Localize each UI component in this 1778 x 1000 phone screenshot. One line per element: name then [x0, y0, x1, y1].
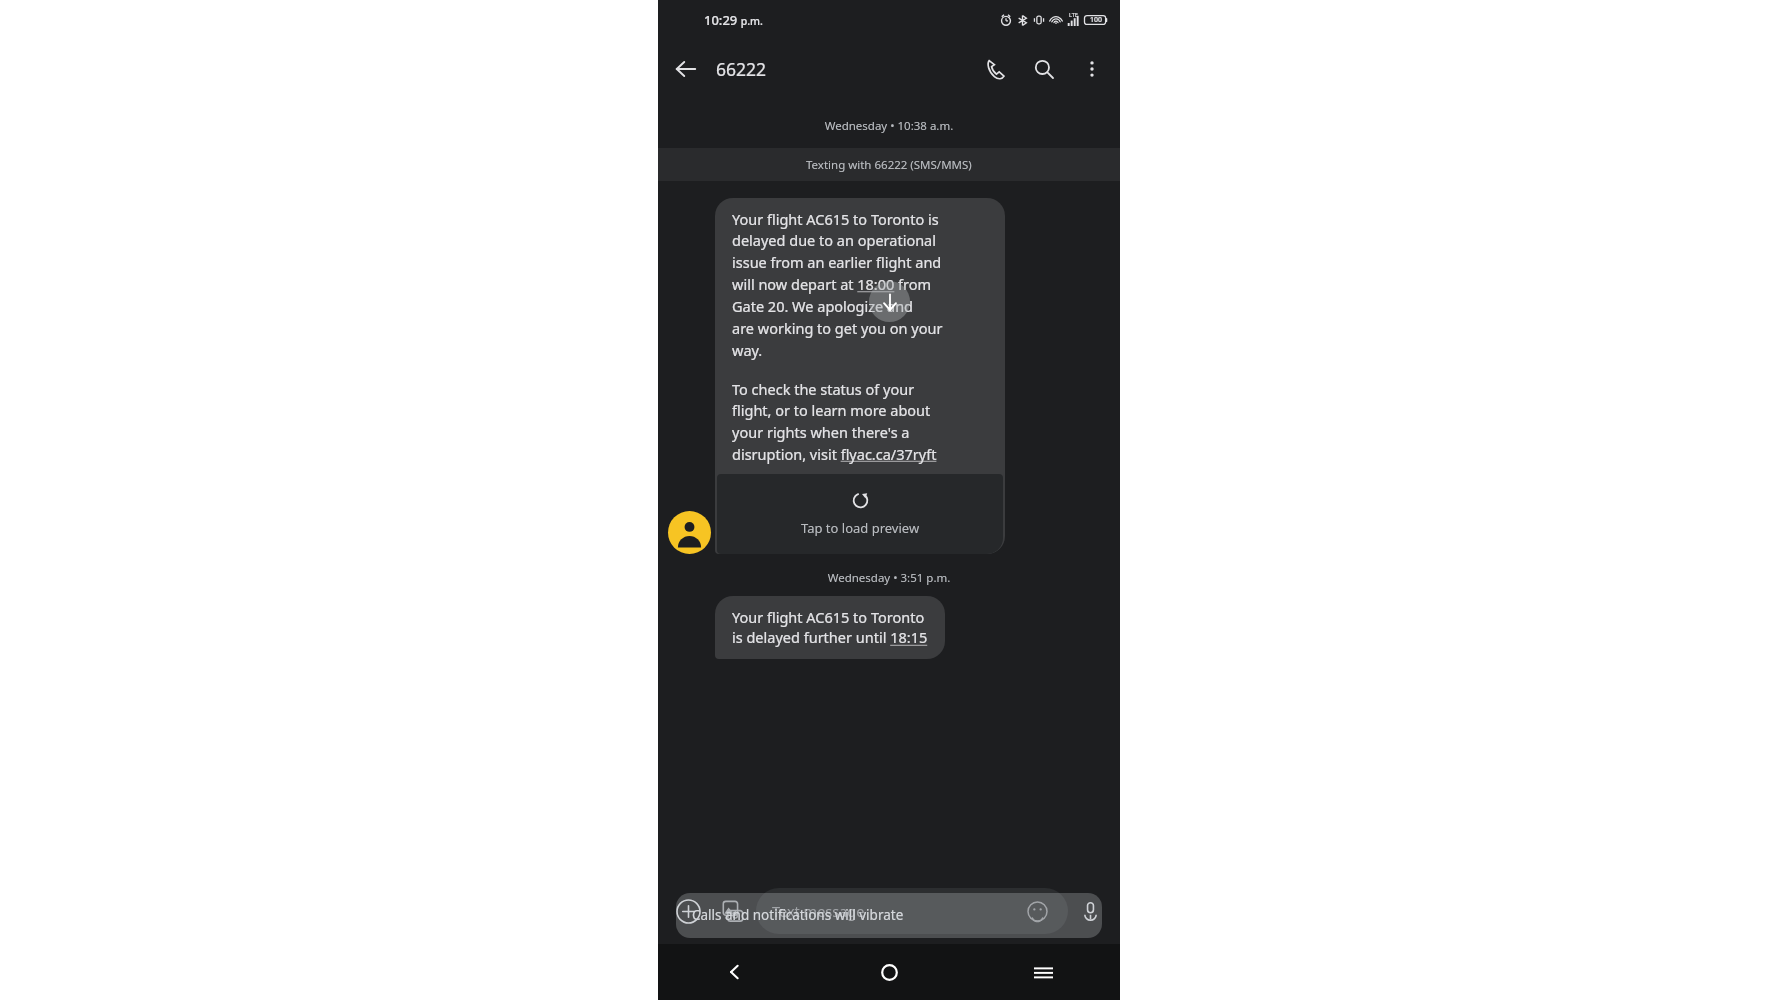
button[interactable]: Add attachment — [666, 889, 710, 933]
button[interactable]: Calls and notifications will vibrate — [676, 893, 1102, 938]
button[interactable]: Back — [662, 45, 710, 93]
button[interactable]: Emoji — [1022, 896, 1052, 926]
staticText: LTE — [1069, 11, 1078, 18]
button[interactable]: Recent apps — [966, 944, 1120, 1000]
staticText: Text message — [772, 901, 865, 921]
button[interactable]: Tap to load preview — [717, 474, 1003, 554]
button[interactable]: Your flight AC615 to Toronto is delayed … — [715, 596, 945, 659]
staticText: Wednesday • 3:51 p.m. — [658, 570, 1120, 586]
button[interactable]: Scroll to bottom — [869, 281, 910, 322]
button[interactable]: Text message — [756, 888, 1068, 934]
button[interactable]: Back — [658, 944, 812, 1000]
staticText: 66222 — [716, 57, 767, 81]
staticText: 10:29 p.m. — [704, 11, 763, 29]
staticText: Your flight AC615 to Toronto is delayed … — [732, 607, 928, 648]
staticText: Calls and notifications will vibrate — [692, 906, 904, 924]
staticText: Tap to load preview — [801, 519, 920, 537]
button[interactable]: More options — [1068, 45, 1116, 93]
staticText: Texting with 66222 (SMS/MMS) — [806, 157, 972, 173]
button[interactable]: Your flight AC615 to Toronto is delayed … — [715, 198, 1005, 554]
staticText: To check the status of your flight, or t… — [732, 379, 937, 464]
button[interactable]: Gallery — [710, 889, 754, 933]
staticText: Your flight AC615 to Toronto is delayed … — [732, 209, 943, 360]
button[interactable]: Home — [812, 944, 966, 1000]
button[interactable]: Search — [1020, 45, 1068, 93]
button[interactable]: Call — [972, 45, 1020, 93]
button[interactable]: Voice input — [1068, 889, 1112, 933]
staticText: 100 — [1090, 15, 1103, 25]
staticText: Wednesday • 10:38 a.m. — [658, 118, 1120, 134]
